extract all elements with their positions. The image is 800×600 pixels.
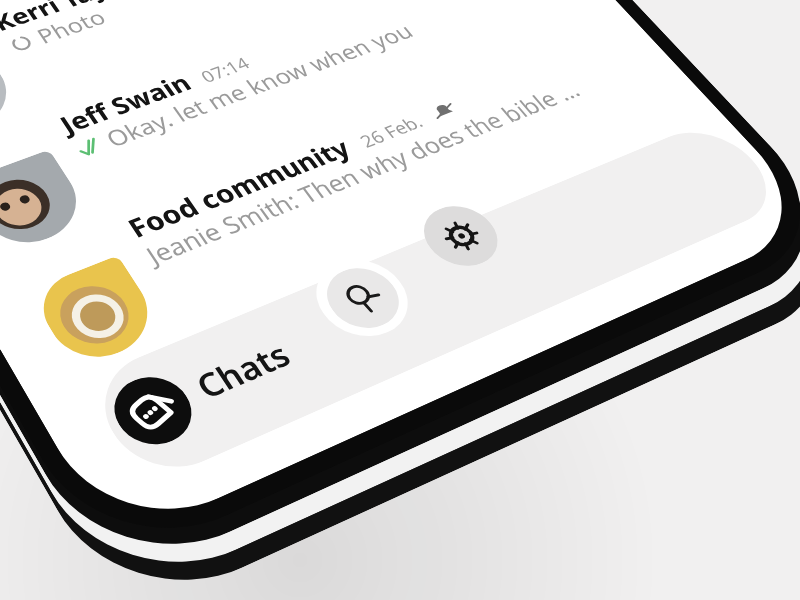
staticText: Jeanie Smith: Then why does the bible ..…	[139, 75, 587, 271]
staticText: Okay. let me know when you	[99, 17, 419, 153]
staticText: Photo	[30, 3, 111, 49]
staticText: 07:14	[196, 52, 255, 87]
staticText: Chats	[187, 332, 299, 408]
button[interactable]: Chats	[101, 324, 307, 456]
button[interactable]: Settings	[410, 197, 512, 276]
button[interactable]	[0, 0, 599, 260]
staticText: Jeff Swain	[53, 67, 197, 140]
staticText: 26 Feb.	[354, 110, 428, 153]
button[interactable]	[0, 0, 516, 146]
button[interactable]: Search	[299, 248, 426, 349]
staticText: Food community	[120, 131, 358, 245]
button[interactable]	[0, 24, 684, 376]
staticText: Kerri Taylor	[0, 0, 147, 37]
